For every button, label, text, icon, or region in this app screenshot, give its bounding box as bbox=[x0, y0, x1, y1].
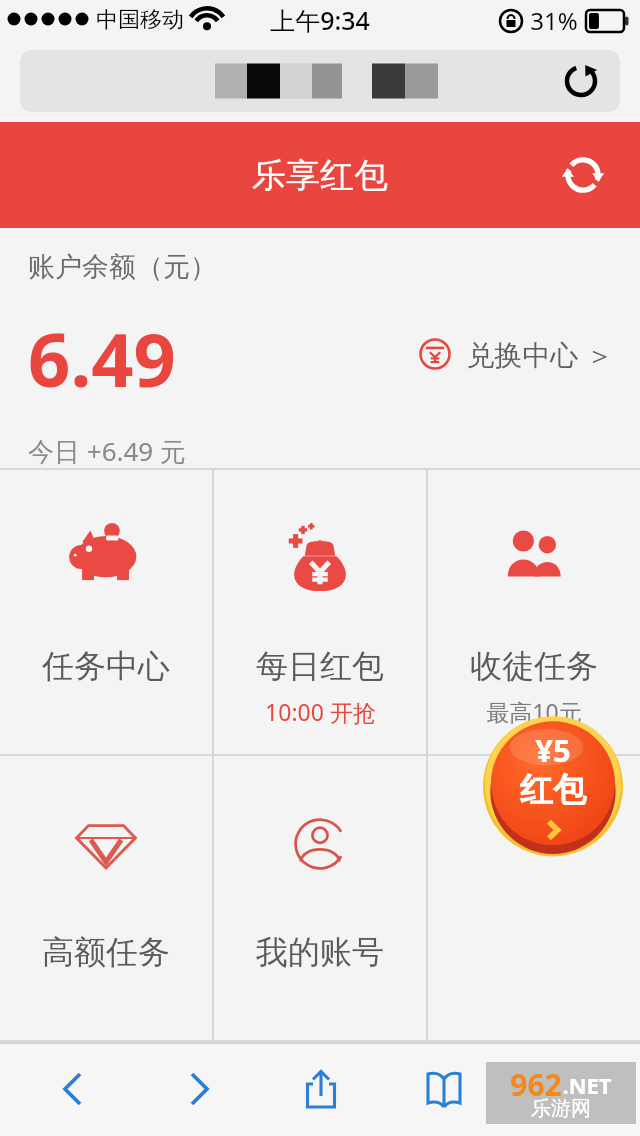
button[interactable]: 收徒任务 bbox=[428, 470, 640, 754]
button[interactable]: 任务中心 bbox=[0, 470, 212, 754]
button[interactable]: Address bar bbox=[20, 50, 620, 112]
staticText: 6.49 bbox=[28, 308, 176, 409]
staticText: 962 bbox=[510, 1064, 562, 1105]
button[interactable] bbox=[428, 756, 640, 1040]
staticText: 31% bbox=[530, 4, 578, 37]
button[interactable]: Bookmarks bbox=[382, 1042, 505, 1136]
staticText: 任务中心 bbox=[42, 646, 170, 686]
staticText: 中国移动 bbox=[96, 6, 184, 34]
button[interactable]: 兑换中心 ＞ bbox=[418, 335, 614, 373]
button[interactable]: 每日红包 bbox=[214, 470, 426, 754]
staticText: 红包 bbox=[520, 769, 586, 811]
staticText: 今日 +6.49 元 bbox=[28, 433, 186, 468]
staticText: 我的账号 bbox=[256, 932, 384, 972]
button[interactable]: Forward bbox=[136, 1042, 259, 1136]
staticText: 兑换中心 ＞ bbox=[466, 335, 614, 373]
staticText: 最高10元 bbox=[486, 696, 582, 727]
button[interactable]: Refresh bbox=[554, 146, 612, 204]
staticText: ¥5 bbox=[535, 729, 571, 771]
button[interactable]: 高额任务 bbox=[0, 756, 212, 1040]
staticText: 收徒任务 bbox=[470, 646, 598, 686]
staticText: 上午9:34 bbox=[270, 3, 370, 37]
staticText: 10:00 开抢 bbox=[265, 696, 376, 727]
staticText: 乐游网 bbox=[531, 1096, 591, 1121]
staticText: 乐享红包 bbox=[252, 154, 388, 197]
button[interactable]: 我的账号 bbox=[214, 756, 426, 1040]
staticText: 账户余额（元） bbox=[28, 250, 217, 284]
button[interactable]: Share bbox=[259, 1042, 382, 1136]
button[interactable]: Back bbox=[12, 1042, 136, 1136]
button[interactable]: 5 yuan red packet bbox=[483, 715, 623, 855]
staticText: .NET bbox=[562, 1070, 612, 1100]
button[interactable]: Tabs bbox=[505, 1042, 628, 1136]
staticText: 每日红包 bbox=[256, 646, 384, 686]
staticText: 高额任务 bbox=[42, 932, 170, 972]
